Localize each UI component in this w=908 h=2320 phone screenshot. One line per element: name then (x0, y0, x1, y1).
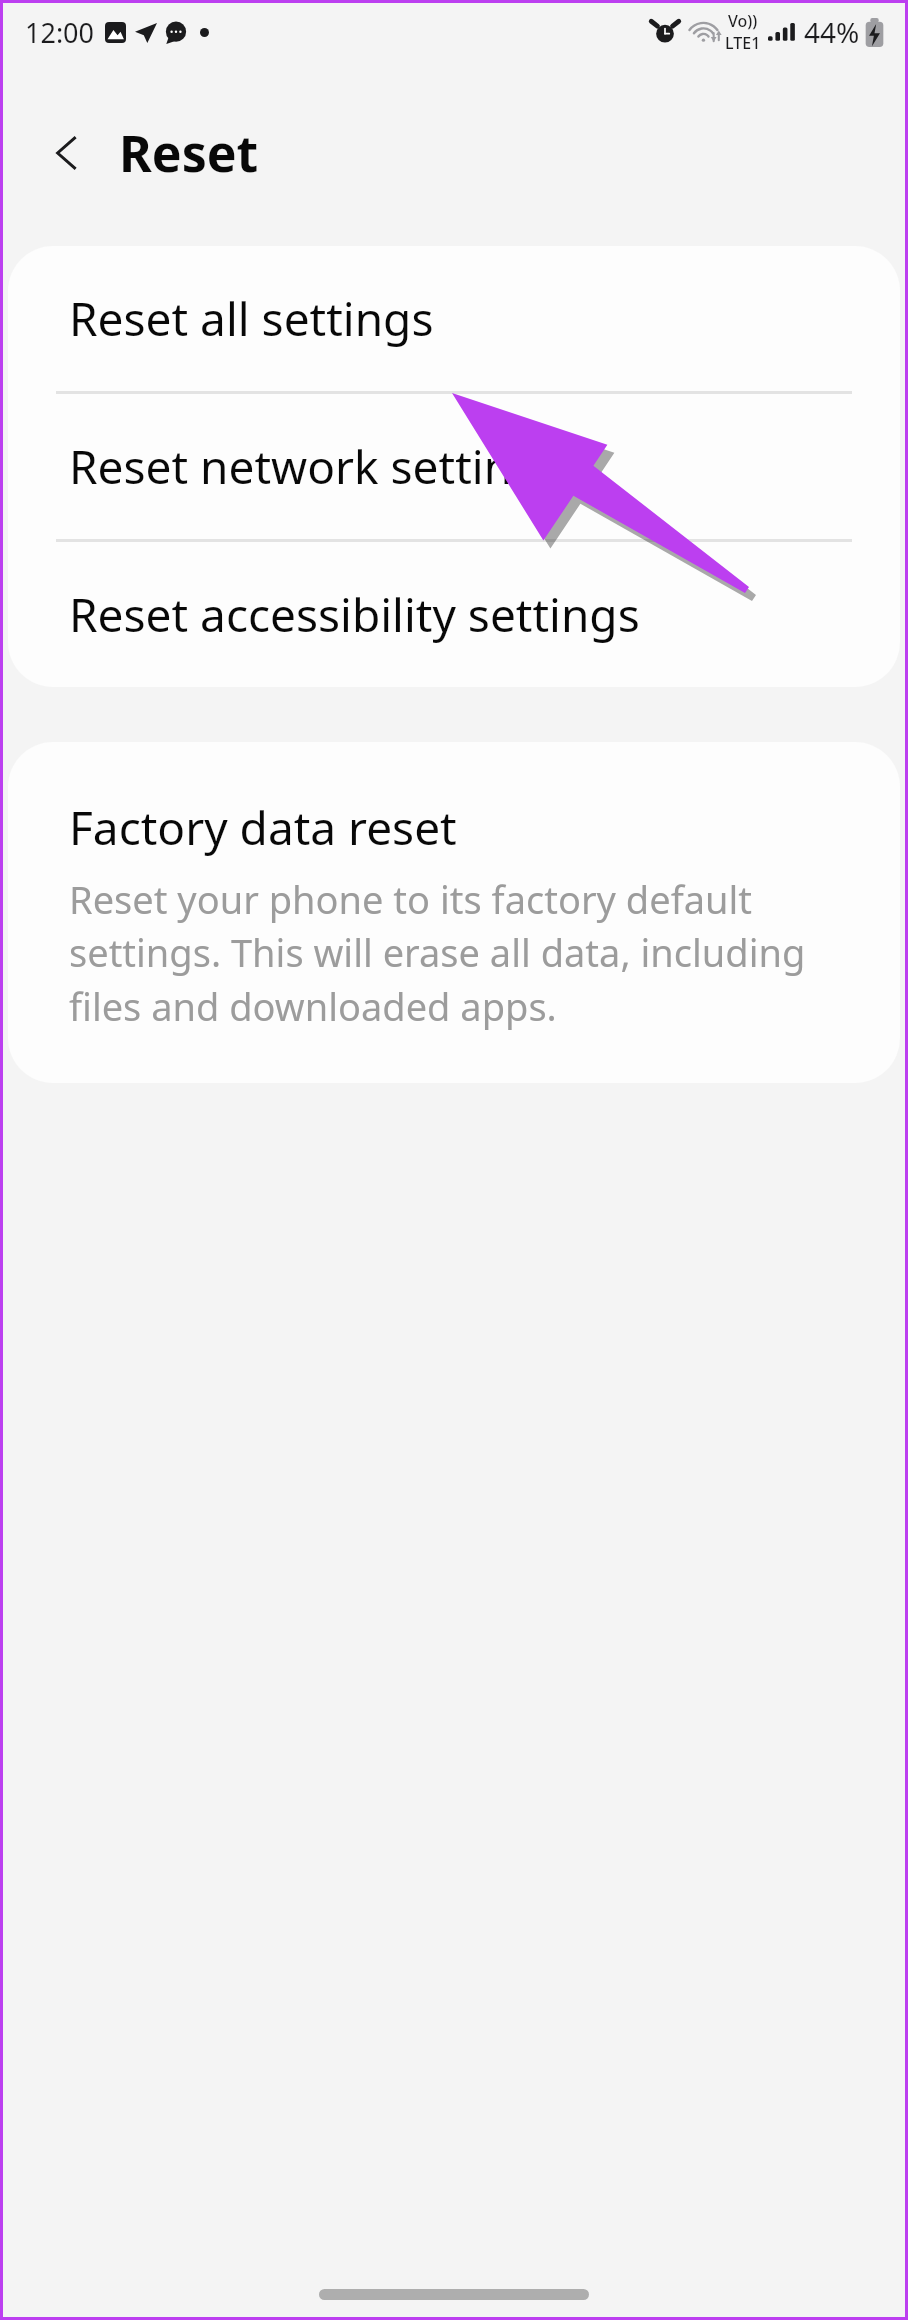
staticText: LTE1 (725, 32, 761, 54)
button[interactable]: Back (37, 123, 97, 183)
button[interactable]: Reset network settings (8, 394, 900, 539)
button[interactable]: Factory data reset (8, 742, 900, 1083)
staticText: 44% (804, 13, 860, 51)
staticText: Reset network settings (69, 435, 563, 498)
staticText: 12:00 (25, 14, 95, 51)
staticText: Reset accessibility settings (69, 583, 640, 646)
staticText: Reset (119, 119, 259, 187)
staticText: Reset your phone to its factory default … (69, 873, 850, 1033)
staticText: Reset all settings (69, 287, 434, 350)
button[interactable]: Reset accessibility settings (8, 542, 900, 687)
button[interactable]: Reset all settings (8, 246, 900, 391)
staticText: Factory data reset (69, 796, 457, 859)
staticText: Vo)) (728, 10, 758, 32)
